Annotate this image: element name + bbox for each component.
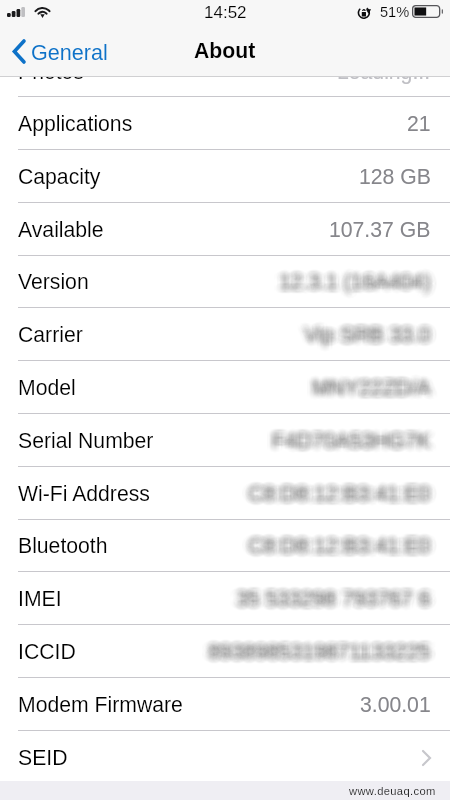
staticText: F4D70A53HG7K: [268, 425, 427, 449]
staticText: 12.3.1 (16A404): [281, 268, 433, 292]
staticText: MNY22ZD/A: [313, 375, 432, 399]
staticText: F4D70A53HG7K: [275, 431, 434, 455]
staticText: 12.3.1 (16A404): [280, 278, 432, 302]
button[interactable]: Bluetooth: [0, 519, 450, 572]
staticText: C8:D8:12:B3:41:E0: [248, 533, 431, 557]
staticText: 35 533298 793767 6: [245, 591, 440, 615]
staticText: F4D70A53HG7K: [276, 435, 435, 459]
staticText: C8:D8:12:B3:41:E0: [248, 541, 431, 565]
staticText: Vip SRB 33.0: [300, 327, 427, 351]
staticText: C8:D8:12:B3:41:E0: [256, 485, 439, 509]
staticText: C8:D8:12:B3:41:E0: [248, 476, 431, 500]
staticText: 35 533298 793767 6: [237, 582, 432, 606]
staticText: 35 533298 793767 6: [243, 591, 438, 615]
button[interactable]: Available: [0, 203, 450, 256]
staticText: C8:D8:12:B3:41:E0: [255, 530, 438, 554]
staticText: 35 533298 793767 6: [235, 586, 430, 610]
staticText: F4D70A53HG7K: [265, 433, 424, 457]
staticText: 12.3.1 (16A404): [283, 265, 435, 289]
staticText: C8:D8:12:B3:41:E0: [254, 541, 437, 565]
staticText: 8938985319871133225: [209, 644, 432, 668]
button[interactable]: IMEI: [0, 572, 450, 625]
staticText: C8:D8:12:B3:41:E0: [255, 540, 438, 564]
button[interactable]: General: [2, 36, 118, 68]
button[interactable]: Model: [0, 361, 450, 414]
staticText: C8:D8:12:B3:41:E0: [245, 486, 428, 510]
staticText: 8938985319871133225: [208, 646, 431, 670]
button[interactable]: Photos: [0, 46, 450, 97]
staticText: C8:D8:12:B3:41:E0: [249, 530, 432, 554]
staticText: MNY22ZD/A: [309, 372, 428, 396]
staticText: C8:D8:12:B3:41:E0: [247, 481, 430, 505]
staticText: C8:D8:12:B3:41:E0: [251, 533, 434, 557]
staticText: 8938985319871133225: [212, 645, 435, 669]
staticText: 8938985319871133225: [203, 636, 426, 660]
staticText: MNY22ZD/A: [311, 377, 430, 401]
staticText: 35 533298 793767 6: [228, 593, 423, 617]
button[interactable]: SEID: [0, 731, 450, 784]
staticText: 12.3.1 (16A404): [276, 274, 428, 298]
button[interactable]: Applications: [0, 97, 450, 150]
staticText: C8:D8:12:B3:41:E0: [249, 476, 432, 500]
staticText: 35 533298 793767 6: [233, 589, 428, 613]
staticText: 8938985319871133225: [209, 642, 432, 666]
staticText: 12.3.1 (16A404): [287, 267, 439, 291]
button[interactable]: Serial Number: [0, 414, 450, 467]
staticText: 12.3.1 (16A404): [277, 264, 429, 288]
staticText: C8:D8:12:B3:41:E0: [243, 536, 426, 560]
staticText: 12.3.1 (16A404): [279, 276, 431, 300]
staticText: 8938985319871133225: [217, 642, 440, 666]
staticText: C8:D8:12:B3:41:E0: [255, 535, 438, 559]
staticText: 12.3.1 (16A404): [269, 268, 421, 292]
staticText: C8:D8:12:B3:41:E0: [252, 477, 435, 501]
staticText: 12.3.1 (16A404): [270, 267, 422, 291]
staticText: 35 533298 793767 6: [229, 589, 424, 613]
staticText: 35 533298 793767 6: [235, 587, 430, 611]
staticText: F4D70A53HG7K: [281, 434, 440, 458]
staticText: F4D70A53HG7K: [270, 431, 429, 455]
staticText: 12.3.1 (16A404): [270, 275, 422, 299]
staticText: MNY22ZD/A: [316, 379, 435, 403]
staticText: 35 533298 793767 6: [235, 580, 430, 604]
staticText: 12.3.1 (16A404): [281, 274, 433, 298]
staticText: 8938985319871133225: [210, 642, 433, 666]
staticText: MNY22ZD/A: [304, 382, 423, 406]
staticText: F4D70A53HG7K: [276, 424, 435, 448]
staticText: F4D70A53HG7K: [282, 429, 441, 453]
staticText: C8:D8:12:B3:41:E0: [239, 530, 422, 554]
staticText: C8:D8:12:B3:41:E0: [243, 488, 426, 512]
staticText: 8938985319871133225: [208, 647, 431, 671]
staticText: F4D70A53HG7K: [273, 429, 432, 453]
button[interactable]: ICCID: [0, 625, 450, 678]
staticText: F4D70A53HG7K: [272, 436, 431, 460]
staticText: C8:D8:12:B3:41:E0: [255, 532, 438, 556]
staticText: MNY22ZD/A: [318, 379, 437, 403]
staticText: MNY22ZD/A: [320, 373, 439, 397]
staticText: 12.3.1 (16A404): [274, 266, 426, 290]
staticText: 8938985319871133225: [206, 637, 429, 661]
staticText: 8938985319871133225: [200, 644, 423, 668]
staticText: 12.3.1 (16A404): [279, 266, 431, 290]
staticText: Vip SRB 33.0: [304, 327, 431, 351]
staticText: 35 533298 793767 6: [233, 584, 428, 608]
staticText: 12.3.1 (16A404): [274, 277, 426, 301]
staticText: 8938985319871133225: [205, 633, 428, 657]
button[interactable]: Modem Firmware: [0, 678, 450, 731]
staticText: 35 533298 793767 6: [231, 585, 426, 609]
staticText: 12.3.1 (16A404): [285, 268, 437, 292]
staticText: MNY22ZD/A: [311, 372, 430, 396]
staticText: Vip SRB 33.0: [312, 318, 439, 342]
staticText: Vip SRB 33.0: [313, 324, 440, 348]
staticText: 35 533298 793767 6: [246, 583, 441, 607]
staticText: 35 533298 793767 6: [235, 592, 430, 616]
staticText: 12.3.1 (16A404): [269, 272, 421, 296]
button[interactable]: Wi-Fi Address: [0, 467, 450, 520]
button[interactable]: Version: [0, 255, 450, 308]
staticText: 8938985319871133225: [208, 648, 431, 672]
button[interactable]: Capacity: [0, 150, 450, 203]
staticText: C8:D8:12:B3:41:E0: [251, 483, 434, 507]
staticText: 12.3.1 (16A404): [282, 269, 434, 293]
button[interactable]: Carrier: [0, 308, 450, 361]
staticText: C8:D8:12:B3:41:E0: [248, 537, 431, 561]
staticText: C8:D8:12:B3:41:E0: [249, 526, 432, 550]
